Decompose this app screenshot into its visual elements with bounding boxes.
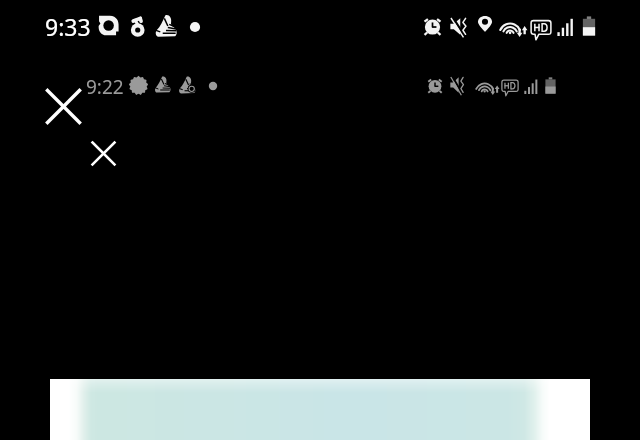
button[interactable]: Sheet [50, 379, 590, 440]
button[interactable]: Close preview [90, 140, 117, 167]
staticText: 9:22 [86, 74, 124, 100]
staticText: 9:33 [45, 11, 91, 42]
button[interactable]: Close [45, 88, 82, 125]
